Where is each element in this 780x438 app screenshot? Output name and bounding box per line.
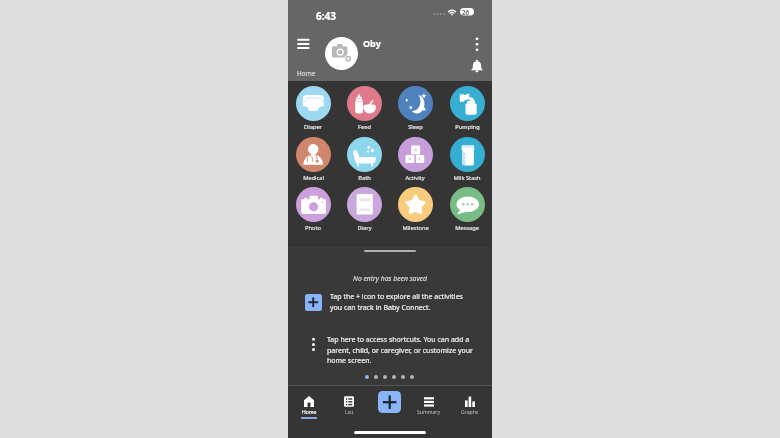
- staticText: Summary: [417, 409, 441, 416]
- button[interactable]: Bath: [341, 137, 387, 183]
- button[interactable]: Add entry: [378, 391, 401, 413]
- button[interactable]: Diaper: [290, 86, 336, 132]
- staticText: Sleep: [408, 123, 423, 131]
- button[interactable]: Photo: [290, 187, 336, 233]
- button[interactable]: Menu: [292, 33, 314, 53]
- button[interactable]: Sleep: [392, 86, 438, 132]
- button[interactable]: Notifications: [469, 58, 485, 75]
- staticText: Home: [302, 409, 317, 416]
- button[interactable]: Message: [444, 187, 490, 233]
- staticText: Milestone: [402, 224, 429, 232]
- staticText: Pumping: [455, 123, 480, 131]
- button[interactable]: Feed: [341, 86, 387, 132]
- staticText: Milk Stash: [453, 174, 481, 182]
- button[interactable]: Activity: [392, 137, 438, 183]
- button[interactable]: List: [331, 393, 367, 419]
- staticText: List: [345, 409, 354, 416]
- button[interactable]: Summary: [411, 393, 447, 419]
- staticText: Activity: [405, 174, 425, 182]
- button[interactable]: Milestone: [392, 187, 438, 233]
- button[interactable]: Diary: [341, 187, 387, 233]
- button[interactable]: Add baby photo: [325, 37, 358, 70]
- staticText: Tap the + icon to explore all the activi…: [330, 292, 463, 312]
- staticText: Message: [455, 224, 479, 232]
- staticText: Feed: [358, 123, 371, 131]
- button[interactable]: Tap here to access shortcuts. You can ad…: [310, 335, 490, 365]
- staticText: 6:43: [316, 9, 336, 23]
- staticText: Photo: [305, 224, 321, 232]
- button[interactable]: Pumping: [444, 86, 490, 132]
- staticText: No entry has been saved: [288, 274, 492, 283]
- staticText: Medical: [303, 174, 324, 182]
- button[interactable]: Graphs: [452, 393, 488, 419]
- button[interactable]: Medical: [290, 137, 336, 183]
- button[interactable]: Milk Stash: [444, 137, 490, 183]
- staticText: Home: [297, 69, 316, 78]
- staticText: Tap here to access shortcuts. You can ad…: [327, 335, 473, 365]
- button[interactable]: Home: [291, 393, 327, 419]
- staticText: Bath: [358, 174, 371, 182]
- staticText: Graphs: [461, 409, 479, 416]
- staticText: Oby: [363, 37, 381, 49]
- button[interactable]: Tap the + icon to explore all the activi…: [305, 292, 469, 312]
- button[interactable]: More options: [469, 32, 485, 54]
- staticText: Diary: [357, 224, 372, 232]
- staticText: 26: [462, 8, 470, 16]
- staticText: Diaper: [304, 123, 322, 131]
